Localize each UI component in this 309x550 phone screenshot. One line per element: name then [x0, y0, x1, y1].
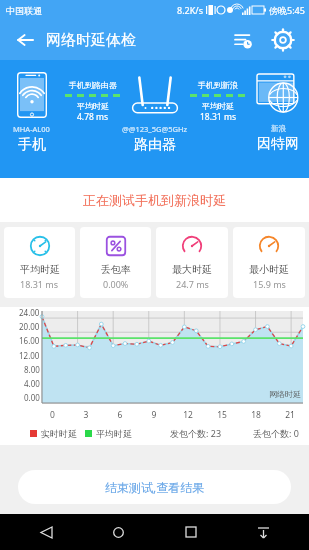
staticText: 15.9 ms: [253, 278, 286, 290]
button[interactable]: Back: [10, 25, 40, 55]
button[interactable]: Recents: [175, 516, 207, 548]
staticText: 丢包个数: 0: [253, 427, 299, 439]
staticText: 新浪: [271, 124, 286, 133]
staticText: 结束测试,查看结果: [105, 479, 205, 495]
staticText: 18.31 ms: [200, 111, 236, 123]
staticText: 平均时延: [96, 428, 132, 439]
button[interactable]: Settings: [267, 24, 299, 56]
staticText: 网络时延: [269, 389, 301, 399]
staticText: 0.00: [24, 392, 40, 403]
staticText: 手机到路由器: [69, 80, 117, 90]
button[interactable]: 平均时延: [4, 227, 75, 298]
button[interactable]: Hide navigation bar: [247, 516, 279, 548]
staticText: 18.31 ms: [20, 278, 59, 290]
staticText: 20.00: [19, 321, 40, 332]
button[interactable]: 最小时延: [233, 227, 305, 298]
staticText: 16.00: [19, 335, 40, 346]
staticText: 0.00%: [103, 278, 129, 290]
staticText: 路由器: [134, 136, 176, 154]
staticText: 9: [137, 409, 171, 421]
staticText: 12: [171, 409, 205, 421]
staticText: 发包个数: 23: [170, 427, 222, 439]
staticText: 15: [205, 409, 239, 421]
staticText: 12.00: [19, 350, 40, 361]
staticText: 中国联通: [6, 5, 42, 16]
staticText: 平均时延: [77, 101, 109, 111]
staticText: 0: [36, 409, 69, 421]
button[interactable]: Back: [30, 516, 62, 548]
button[interactable]: 结束测试,查看结果: [18, 470, 291, 504]
staticText: 手机到新浪: [198, 80, 238, 90]
staticText: 8.00: [24, 364, 40, 375]
staticText: 丢包率: [101, 263, 131, 276]
staticText: 8.2K/s: [177, 4, 203, 16]
staticText: 因特网: [257, 135, 299, 153]
button[interactable]: 丢包率: [80, 227, 151, 298]
staticText: 4.78 ms: [77, 111, 109, 123]
button[interactable]: 最大时延: [156, 227, 228, 298]
staticText: 最小时延: [249, 263, 289, 276]
staticText: 18: [239, 409, 273, 421]
staticText: 网络时延体检: [46, 31, 136, 50]
staticText: 21: [273, 409, 307, 421]
staticText: 实时时延: [41, 428, 77, 439]
staticText: 3: [69, 409, 103, 421]
staticText: 傍晚5:45: [269, 4, 305, 16]
staticText: 平均时延: [20, 263, 60, 276]
button[interactable]: Home: [102, 516, 134, 548]
staticText: 正在测试手机到新浪时延: [83, 192, 226, 208]
staticText: 6: [103, 409, 137, 421]
staticText: 手机: [18, 136, 46, 154]
staticText: MHA-AL00: [13, 124, 50, 134]
staticText: 平均时延: [202, 101, 234, 111]
staticText: 4.00: [24, 378, 40, 389]
button[interactable]: History: [227, 24, 259, 56]
staticText: 24.7 ms: [176, 278, 209, 290]
staticText: 最大时延: [172, 263, 212, 276]
staticText: @@123_5G@5GHz: [122, 124, 188, 134]
staticText: 24.00: [19, 307, 40, 318]
